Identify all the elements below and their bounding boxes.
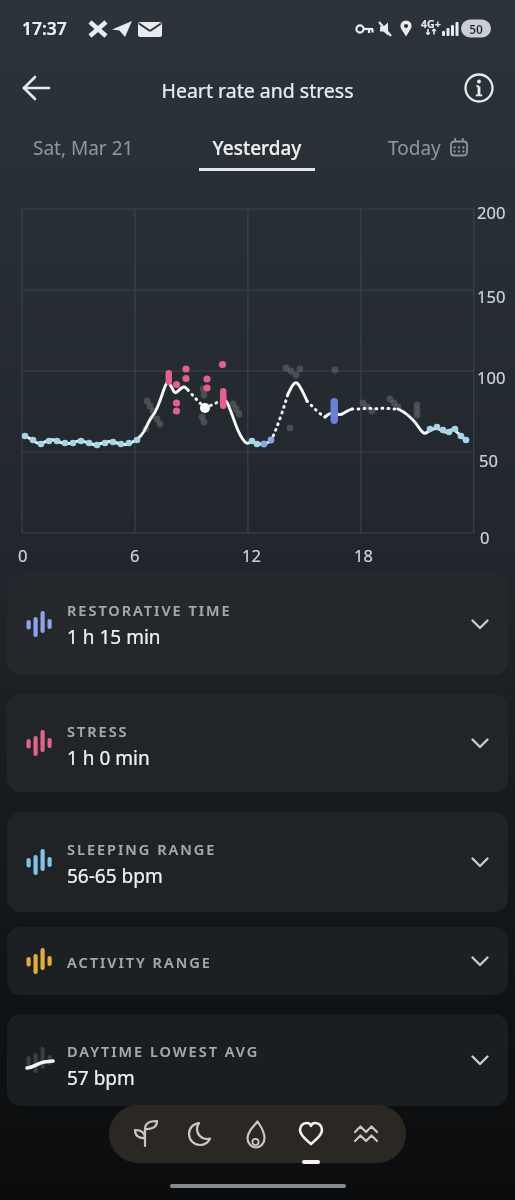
button[interactable]: SLEEPING RANGE (7, 812, 508, 912)
button[interactable] (231, 1105, 281, 1163)
staticText: 1 h 15 min (67, 624, 161, 650)
staticText: 18 (354, 544, 373, 566)
staticText: STRESS (67, 721, 129, 741)
staticText: 50 (461, 21, 491, 37)
staticText: 12 (242, 544, 261, 566)
button[interactable] (286, 1105, 336, 1163)
button[interactable]: Sat, Mar 21 (20, 126, 160, 168)
staticText: 150 (477, 285, 506, 307)
staticText: 17:37 (22, 16, 67, 40)
staticText: 6 (130, 544, 140, 566)
button[interactable] (461, 70, 497, 106)
staticText: 200 (477, 201, 506, 223)
staticText: ACTIVITY RANGE (67, 952, 212, 972)
button[interactable] (16, 70, 56, 106)
staticText: 56-65 bpm (67, 863, 163, 889)
staticText: DAYTIME LOWEST AVG (67, 1041, 260, 1061)
staticText: SLEEPING RANGE (67, 839, 217, 859)
button[interactable]: STRESS (7, 694, 508, 792)
button[interactable] (121, 1105, 171, 1163)
staticText: Heart rate and stress (0, 77, 515, 104)
staticText: 50 (479, 449, 498, 471)
button[interactable] (341, 1105, 391, 1163)
button[interactable]: Today (378, 126, 480, 168)
button[interactable] (175, 1105, 225, 1163)
staticText: 0 (480, 526, 490, 548)
button[interactable]: RESTORATIVE TIME (7, 573, 508, 675)
button[interactable]: DAYTIME LOWEST AVG (7, 1014, 508, 1106)
staticText: RESTORATIVE TIME (67, 600, 232, 620)
staticText: Today (388, 135, 441, 161)
staticText: 57 bpm (67, 1065, 135, 1091)
staticText: 1 h 0 min (67, 745, 150, 771)
staticText: 4G+ (421, 17, 441, 31)
staticText: 100 (477, 366, 506, 388)
button[interactable]: Yesterday (196, 126, 318, 174)
staticText: 0 (18, 544, 28, 566)
button[interactable]: ACTIVITY RANGE (7, 927, 508, 995)
staticText: Yesterday (196, 135, 318, 161)
staticText: Sat, Mar 21 (33, 135, 134, 161)
